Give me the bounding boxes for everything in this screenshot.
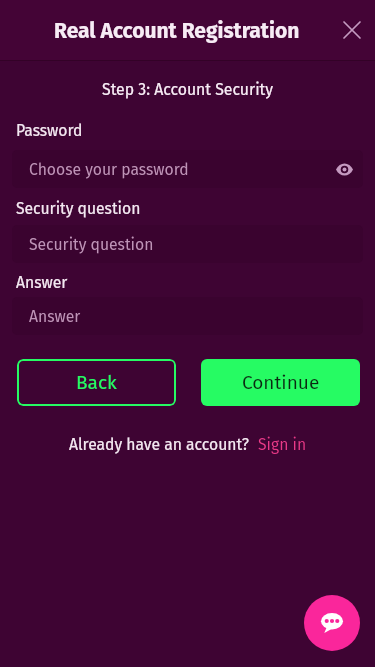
button[interactable]: Sign in bbox=[258, 435, 307, 454]
staticText: Step 3: Account Security bbox=[0, 80, 375, 99]
staticText: Back bbox=[76, 371, 117, 394]
button[interactable]: Security question bbox=[12, 225, 363, 263]
staticText: Continue bbox=[242, 371, 320, 394]
button[interactable]: Close bbox=[332, 10, 372, 50]
staticText: Already have an account? bbox=[69, 435, 249, 454]
staticText: Sign in bbox=[258, 435, 307, 454]
staticText: Answer bbox=[16, 273, 68, 292]
staticText: Security question bbox=[29, 235, 154, 254]
button[interactable]: Answer bbox=[12, 297, 363, 335]
staticText: Real Account Registration bbox=[54, 18, 300, 43]
staticText: Answer bbox=[29, 307, 81, 326]
button[interactable]: Back bbox=[17, 359, 176, 406]
staticText: Choose your password bbox=[29, 160, 189, 179]
button[interactable]: Chat bbox=[304, 595, 360, 651]
staticText: Password bbox=[16, 121, 83, 140]
button[interactable]: Choose your password bbox=[12, 150, 363, 188]
button[interactable]: Continue bbox=[201, 359, 360, 406]
staticText: Security question bbox=[16, 199, 141, 218]
button[interactable]: Show password bbox=[332, 157, 356, 181]
